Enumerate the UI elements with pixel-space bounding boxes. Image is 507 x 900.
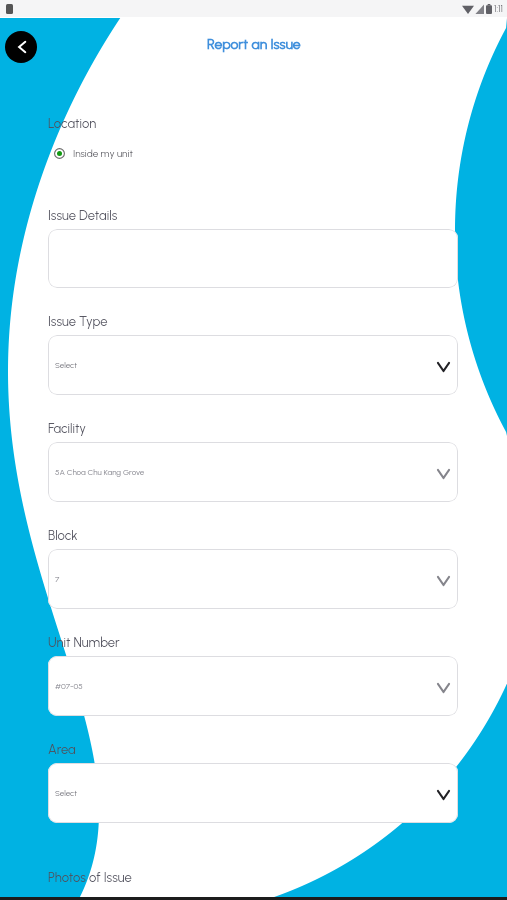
button[interactable]: Back [5,31,37,63]
staticText: Facility [48,421,87,437]
button[interactable]: Select [48,763,458,823]
staticText: Photos of Issue [48,870,132,886]
staticText: 5A Choa Chu Kang Grove [55,467,145,477]
button[interactable] [48,229,458,288]
staticText: Block [48,528,78,544]
button[interactable]: Select [48,335,458,395]
button[interactable]: #07-05 [48,656,458,716]
staticText: Location [48,116,97,132]
button[interactable]: 5A Choa Chu Kang Grove [48,442,458,502]
staticText: #07-05 [55,681,83,691]
staticText: 1:11 [494,3,503,14]
staticText: Area [48,742,76,758]
staticText: Report an Issue [207,36,301,53]
staticText: Inside my unit [73,147,133,159]
staticText: Issue Type [48,314,108,330]
staticText: Select [55,788,77,798]
button[interactable]: 7 [48,549,458,609]
button[interactable]: Inside my unit [54,145,133,161]
staticText: 7 [55,574,60,584]
staticText: Select [55,360,77,370]
staticText: Issue Details [48,208,118,224]
staticText: Unit Number [48,635,120,651]
